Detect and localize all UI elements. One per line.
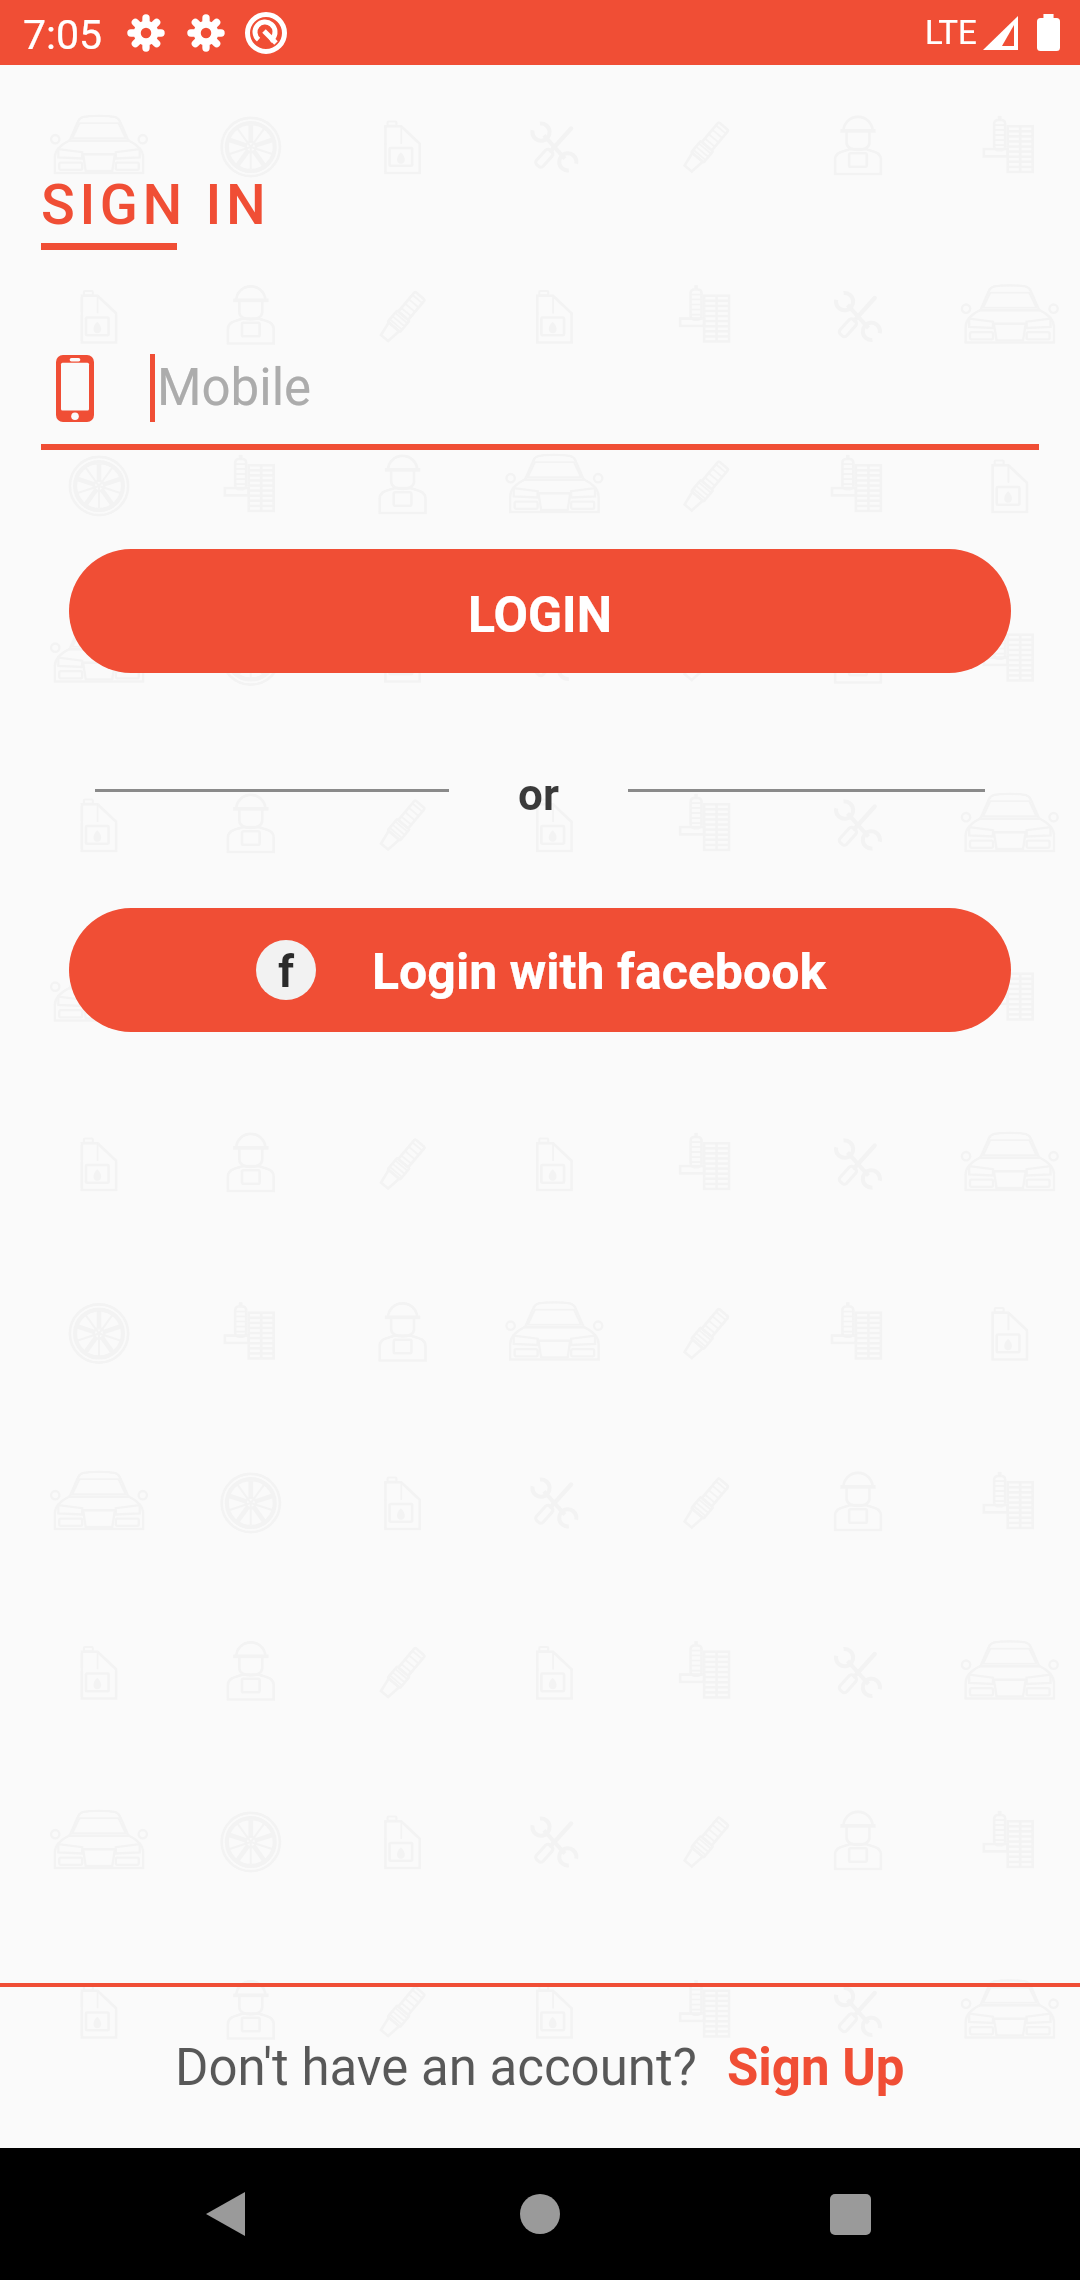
staticText: Login with facebook	[372, 943, 827, 1002]
staticText: LOGIN	[468, 586, 613, 645]
button[interactable]: Recents	[805, 2169, 895, 2259]
button[interactable]: LOGIN	[69, 549, 1011, 673]
staticText: Sign Up	[727, 2038, 905, 2098]
button[interactable]: f	[69, 908, 1011, 1032]
staticText: Don't have an account?	[175, 2038, 697, 2098]
staticText: LTE	[925, 13, 977, 52]
button[interactable]: Back	[180, 2169, 270, 2259]
staticText: 7:05	[23, 11, 103, 59]
staticText: f	[278, 945, 295, 998]
button[interactable]: Home	[495, 2169, 585, 2259]
staticText: SIGN IN	[41, 172, 271, 238]
button[interactable]: Don't have an account?	[0, 1987, 1080, 2148]
staticText: Mobile	[157, 358, 312, 418]
staticText: or	[518, 769, 559, 821]
